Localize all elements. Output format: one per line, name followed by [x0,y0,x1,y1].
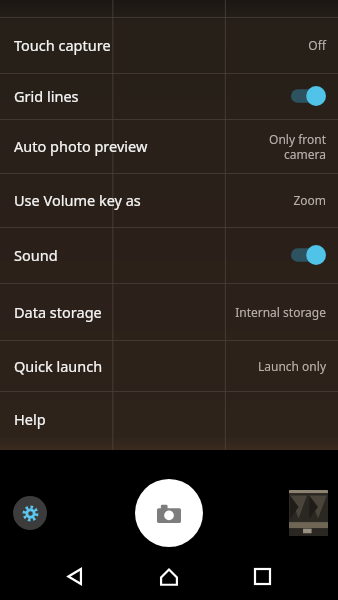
button[interactable]: Shutter [135,479,203,547]
staticText: Quick launch [14,356,257,376]
button[interactable]: Back [51,553,99,600]
button[interactable]: Auto photo preview [0,119,338,173]
staticText: Auto photo preview [14,136,269,156]
button[interactable]: On [291,85,326,107]
button[interactable]: Use Volume key as [0,173,338,227]
button[interactable]: Touch capture [0,17,338,73]
staticText: Use Volume key as [14,190,293,210]
button[interactable]: Quick launch [0,340,338,391]
button[interactable]: Recent apps [238,553,286,600]
staticText: Grid lines [14,86,291,106]
button[interactable]: On [291,244,326,266]
staticText: Touch capture [14,35,308,55]
button[interactable]: Sound [0,227,338,283]
button[interactable]: Help [0,391,338,446]
button[interactable]: Gallery [289,490,328,536]
staticText: Zoom [293,192,326,208]
staticText: Launch only [257,358,326,374]
staticText: Sound [14,245,291,265]
staticText: Data storage [14,302,235,322]
staticText: Internal storage [235,304,326,320]
staticText: Off [308,37,326,53]
button[interactable]: Data storage [0,283,338,340]
button[interactable]: Grid lines [0,73,338,119]
staticText: Only front camera [269,131,326,162]
staticText: Help [14,409,326,429]
button[interactable]: Home [145,553,193,600]
button[interactable]: Camera settings [13,496,47,530]
